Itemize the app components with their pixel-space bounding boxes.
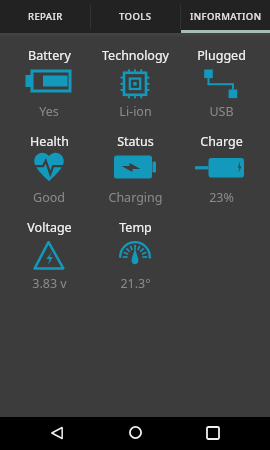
staticText: Li-ion bbox=[119, 103, 152, 119]
staticText: Good bbox=[33, 189, 65, 205]
button[interactable]: TOOLS bbox=[91, 0, 180, 33]
button[interactable]: Home bbox=[117, 417, 153, 450]
button[interactable]: Technology bbox=[92, 33, 178, 119]
staticText: USB bbox=[209, 103, 234, 119]
staticText: TOOLS bbox=[119, 10, 152, 23]
staticText: Battery bbox=[28, 47, 71, 64]
button[interactable]: Health bbox=[6, 119, 92, 205]
staticText: 3.83 v bbox=[32, 275, 67, 291]
button[interactable]: Recents bbox=[195, 417, 231, 450]
button[interactable]: INFORMATION bbox=[181, 0, 270, 33]
staticText: Charge bbox=[200, 133, 243, 150]
staticText: Technology bbox=[102, 47, 169, 64]
staticText: Voltage bbox=[27, 219, 72, 236]
staticText: Temp bbox=[119, 219, 152, 236]
staticText: Yes bbox=[39, 103, 59, 119]
button[interactable]: Charge bbox=[178, 119, 264, 205]
staticText: Plugged bbox=[197, 47, 246, 64]
button[interactable]: Battery bbox=[6, 33, 92, 119]
button[interactable]: Temp bbox=[92, 205, 178, 291]
staticText: Status bbox=[117, 133, 154, 150]
staticText: INFORMATION bbox=[190, 10, 262, 23]
staticText: REPAIR bbox=[28, 10, 63, 23]
button[interactable]: Back bbox=[39, 417, 75, 450]
button[interactable]: REPAIR bbox=[0, 0, 90, 33]
button[interactable]: Status bbox=[92, 119, 178, 205]
button[interactable]: Voltage bbox=[6, 205, 92, 291]
staticText: Health bbox=[30, 133, 69, 150]
staticText: 23% bbox=[209, 189, 234, 205]
staticText: Charging bbox=[108, 189, 163, 205]
staticText: 21.3° bbox=[120, 275, 151, 291]
button[interactable]: Plugged bbox=[178, 33, 264, 119]
